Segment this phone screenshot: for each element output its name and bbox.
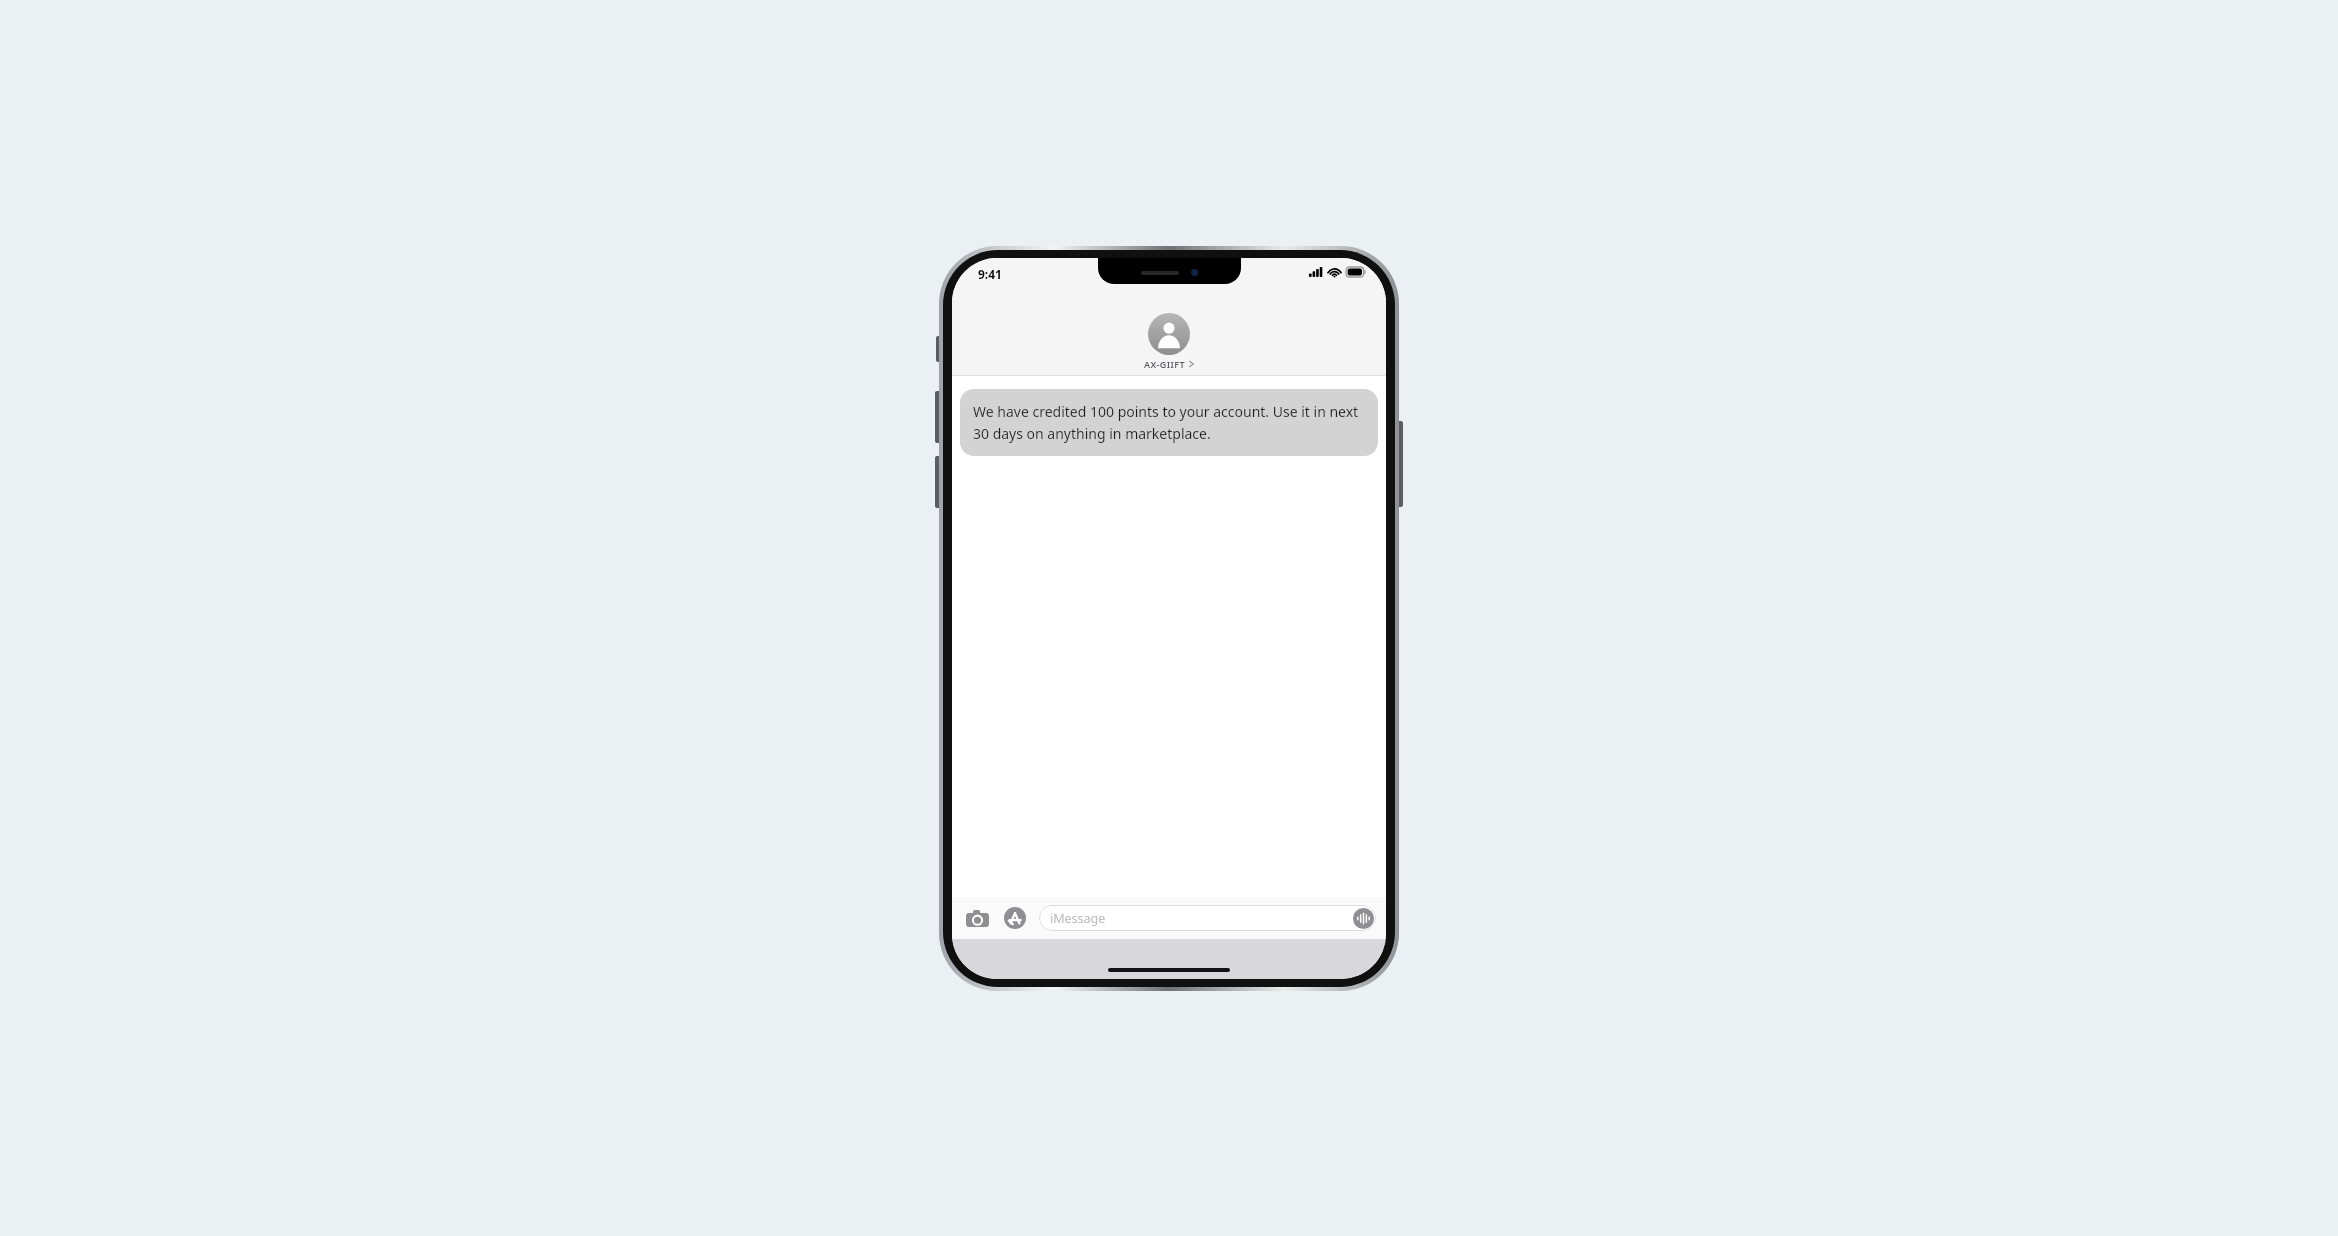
button[interactable]: iMessage: [1039, 905, 1376, 931]
button[interactable]: AX-GIIFT: [1144, 313, 1194, 370]
button[interactable]: Apps: [1000, 903, 1030, 933]
staticText: AX-GIIFT: [1144, 358, 1186, 370]
button[interactable]: Camera: [962, 903, 992, 933]
staticText: 9:41: [978, 266, 1002, 282]
staticText: iMessage: [1050, 910, 1106, 927]
button[interactable]: Record audio message: [1352, 907, 1374, 929]
staticText: We have credited 100 points to your acco…: [973, 402, 1365, 443]
button[interactable]: We have credited 100 points to your acco…: [960, 389, 1378, 456]
